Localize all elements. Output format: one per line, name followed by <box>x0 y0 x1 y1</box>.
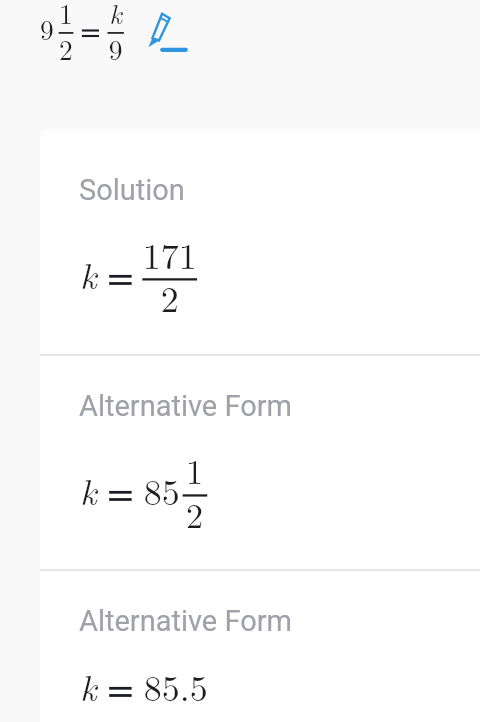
button[interactable]: Edit equation <box>144 6 192 54</box>
staticText: Solution <box>79 173 185 207</box>
staticText: Alternative Form <box>79 389 292 423</box>
button[interactable] <box>40 129 480 355</box>
staticText: Alternative Form <box>79 604 292 638</box>
button[interactable] <box>40 570 480 722</box>
button[interactable] <box>40 355 480 570</box>
button[interactable]: Equation 9 1/2 = k/9 <box>24 2 140 64</box>
